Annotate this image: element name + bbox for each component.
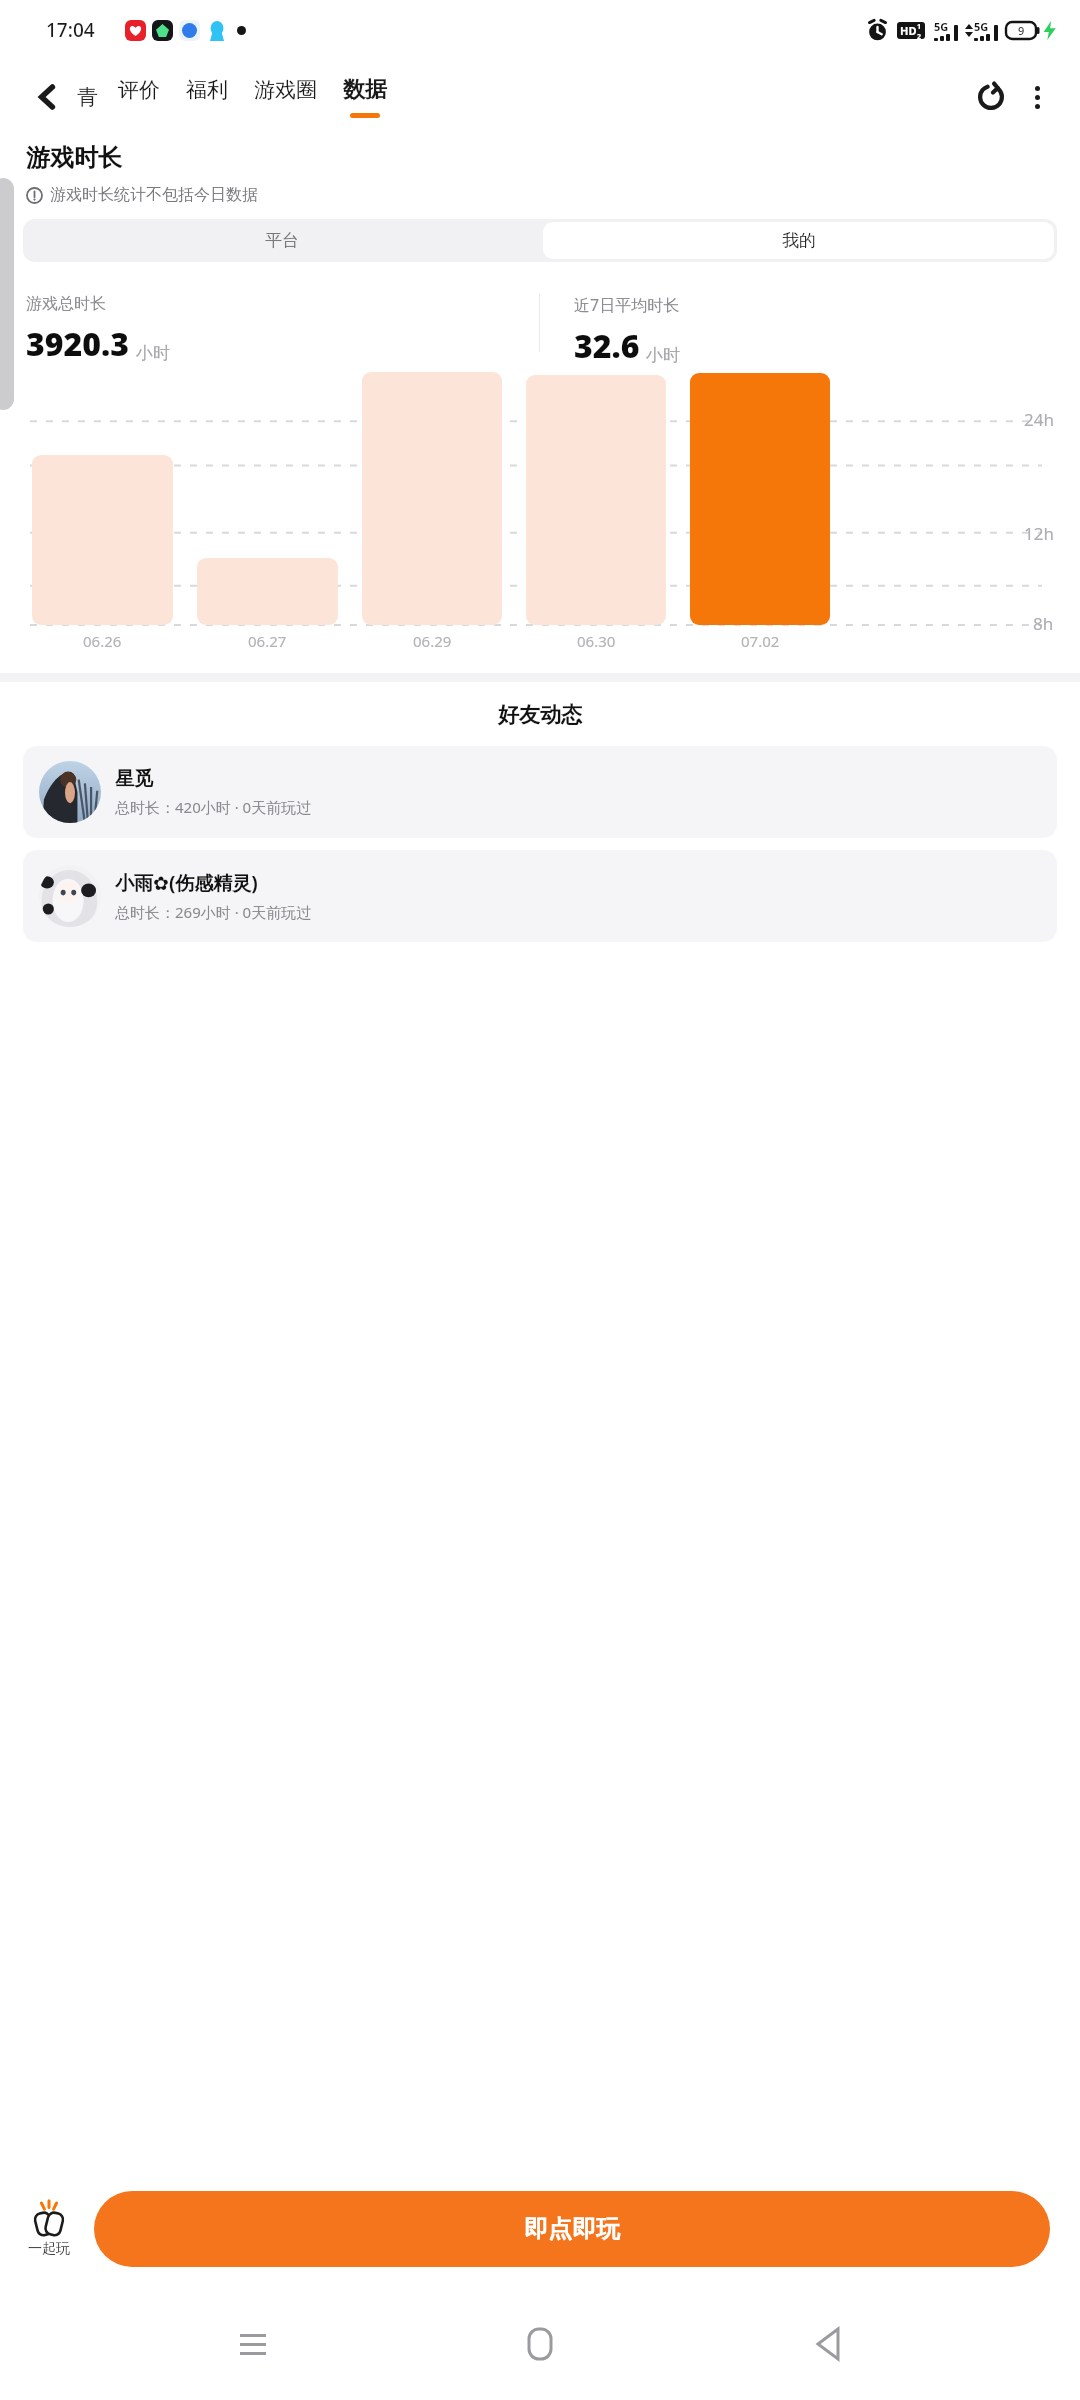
staticText: 总时长：269小时 · 0天前玩过 xyxy=(115,902,312,922)
button[interactable]: 返回 xyxy=(24,73,72,121)
staticText: 星觅 xyxy=(115,767,153,791)
staticText: 12h xyxy=(1024,522,1054,545)
staticText: 近7日平均时长 xyxy=(574,294,680,316)
staticText: 17:04 xyxy=(46,17,95,43)
button[interactable]: 最近任务 xyxy=(218,2309,288,2379)
staticText: 06.27 xyxy=(248,631,287,651)
button[interactable]: 更多 xyxy=(1014,74,1060,120)
button[interactable]: 星觅 xyxy=(23,746,1057,838)
button[interactable]: 我的 xyxy=(543,222,1054,259)
button[interactable]: 评价 xyxy=(116,77,162,117)
button[interactable]: 小雨✿(伤感精灵) xyxy=(23,850,1057,942)
staticText: 数据 xyxy=(343,76,387,104)
staticText: 游戏总时长 xyxy=(26,294,106,314)
staticText: 我的 xyxy=(782,230,816,251)
staticText: 06.26 xyxy=(83,631,122,651)
staticText: 小时 xyxy=(646,345,680,366)
staticText: 06.29 xyxy=(413,631,452,651)
staticText: 32.6 xyxy=(574,324,640,368)
staticText: 评价 xyxy=(118,77,160,103)
staticText: HD xyxy=(900,23,917,38)
staticText: 平台 xyxy=(265,230,299,251)
staticText: 游戏时长 xyxy=(26,143,122,173)
staticText: 2 xyxy=(917,32,922,39)
staticText: 福利 xyxy=(186,77,228,103)
button[interactable]: 游戏圈 xyxy=(252,77,319,117)
staticText: 8h xyxy=(1033,612,1054,635)
button[interactable]: 返回 xyxy=(793,2309,863,2379)
button[interactable]: 青 xyxy=(72,84,102,110)
staticText: 5G xyxy=(934,19,949,34)
staticText: 总时长：420小时 · 0天前玩过 xyxy=(115,797,312,817)
staticText: 5G xyxy=(974,19,989,34)
staticText: 9 xyxy=(1018,23,1025,38)
staticText: 好友动态 xyxy=(0,702,1080,728)
button[interactable]: 主屏幕 xyxy=(505,2309,575,2379)
staticText: 游戏时长统计不包括今日数据 xyxy=(50,185,258,205)
staticText: 即点即玩 xyxy=(524,2214,620,2244)
button[interactable]: 一起玩 xyxy=(26,2200,72,2258)
staticText: 小时 xyxy=(136,343,170,364)
button[interactable]: 数据 xyxy=(341,76,389,118)
staticText: 1 xyxy=(917,22,922,32)
staticText: 07.02 xyxy=(741,631,780,651)
staticText: 游戏圈 xyxy=(254,77,317,103)
staticText: 24h xyxy=(1024,408,1054,431)
button[interactable]: 即点即玩 xyxy=(94,2191,1050,2267)
button[interactable]: 平台 xyxy=(23,219,540,262)
staticText: 小雨✿(伤感精灵) xyxy=(115,870,258,896)
staticText: 3920.3 xyxy=(26,322,130,366)
staticText: 一起玩 xyxy=(28,2240,70,2258)
staticText: 06.30 xyxy=(577,631,616,651)
button[interactable]: 福利 xyxy=(184,77,230,117)
staticText: 青 xyxy=(77,84,98,110)
button[interactable]: 分享 xyxy=(968,74,1014,120)
